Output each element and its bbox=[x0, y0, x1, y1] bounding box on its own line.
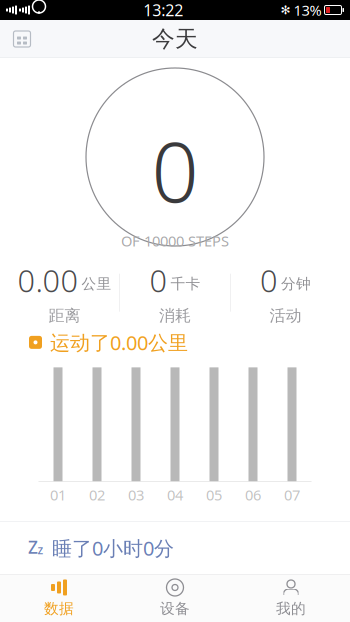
staticText: OF 10000 STEPS bbox=[121, 231, 229, 251]
button[interactable]: 运动了0.00公里 bbox=[0, 325, 350, 359]
staticText: 05 bbox=[206, 485, 222, 504]
staticText: 我的 bbox=[276, 599, 306, 617]
staticText: 0 bbox=[151, 115, 198, 225]
staticText: 0.00 bbox=[17, 260, 78, 301]
button[interactable]: Z bbox=[0, 522, 350, 574]
button[interactable]: 0 bbox=[120, 260, 230, 325]
staticText: ✻ bbox=[280, 3, 290, 17]
staticText: 设备 bbox=[160, 599, 190, 617]
staticText: Z bbox=[28, 535, 38, 558]
staticText: 距离 bbox=[48, 306, 80, 325]
staticText: 今天 bbox=[152, 25, 198, 53]
staticText: 活动 bbox=[269, 306, 301, 325]
staticText: 13:22 bbox=[143, 0, 183, 21]
staticText: 睡了0小时0分 bbox=[52, 535, 174, 561]
staticText: 千卡 bbox=[170, 275, 200, 293]
button[interactable]: 0 bbox=[230, 260, 340, 325]
staticText: 公里 bbox=[81, 275, 111, 293]
staticText: 02 bbox=[89, 485, 105, 504]
staticText: 01 bbox=[50, 485, 66, 504]
staticText: 06 bbox=[245, 485, 261, 504]
staticText: 03 bbox=[128, 485, 144, 504]
staticText: 0 bbox=[149, 260, 167, 301]
staticText: 04 bbox=[167, 485, 183, 504]
button[interactable]: 设备 bbox=[117, 574, 233, 622]
staticText: 消耗 bbox=[159, 306, 191, 325]
button[interactable]: Calendar bbox=[0, 20, 44, 58]
staticText: 07 bbox=[284, 485, 300, 504]
staticText: 运动了0.00公里 bbox=[50, 329, 188, 356]
staticText: z bbox=[37, 541, 43, 557]
staticText: 分钟 bbox=[281, 275, 311, 293]
staticText: 0 bbox=[260, 260, 278, 301]
button[interactable]: 0.00 bbox=[9, 260, 119, 325]
button[interactable]: 我的 bbox=[233, 574, 349, 622]
staticText: 13% bbox=[293, 0, 321, 20]
staticText: 数据 bbox=[44, 599, 74, 617]
button[interactable]: 数据 bbox=[1, 574, 117, 622]
